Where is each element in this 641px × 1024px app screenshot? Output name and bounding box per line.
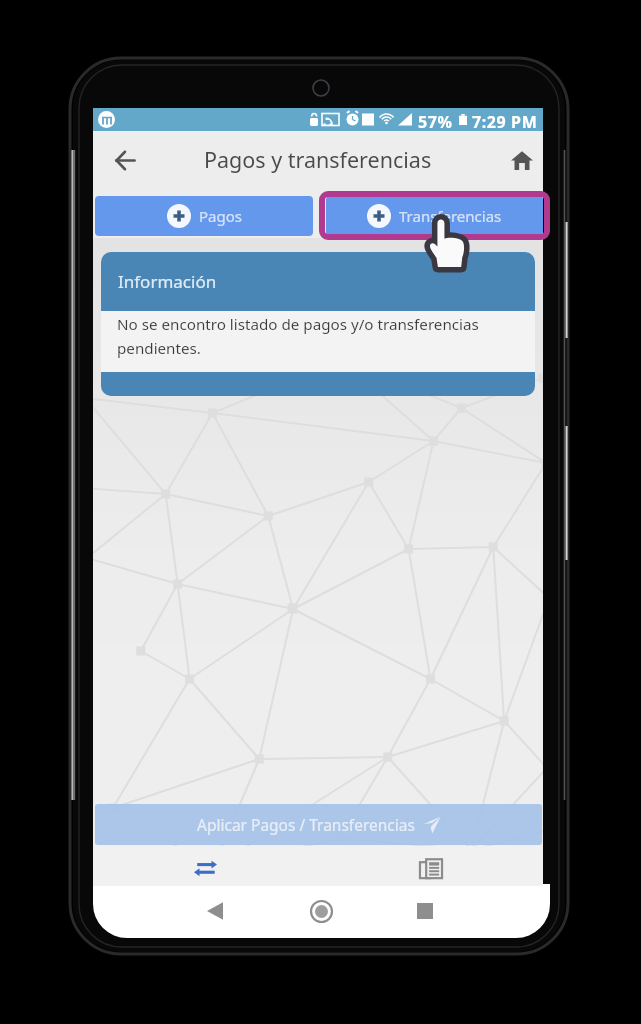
other: Tap indicator (420, 213, 472, 280)
staticText: Información (118, 270, 217, 293)
button[interactable]: Home (300, 890, 342, 932)
staticText: 7:29 PM (472, 111, 538, 133)
button[interactable]: Transferencias (326, 196, 543, 236)
staticText: Pagos y transferencias (204, 145, 432, 174)
staticText: No se encontro listado de pagos y/o tran… (117, 314, 485, 358)
button[interactable]: Home (502, 140, 542, 180)
button[interactable]: Listado (318, 846, 543, 886)
staticText: 57% (418, 111, 453, 133)
button[interactable]: Recents (404, 890, 446, 932)
button[interactable]: Aplicar Pagos / Transferencias (95, 804, 542, 845)
button[interactable]: Back (194, 890, 236, 932)
staticText: Aplicar Pagos / Transferencias (197, 814, 415, 835)
staticText: Pagos (199, 206, 242, 226)
button[interactable]: Back (105, 140, 145, 180)
staticText: Transferencias (399, 206, 502, 226)
button[interactable]: Pagos (95, 196, 313, 236)
button[interactable]: Transferencias (93, 846, 318, 886)
